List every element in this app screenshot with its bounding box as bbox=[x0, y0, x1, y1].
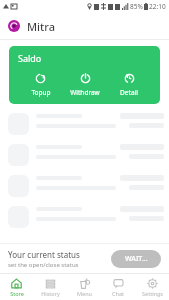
staticText: Saldo bbox=[18, 52, 42, 64]
button[interactable]: Settings bbox=[135, 278, 169, 297]
staticText: WAIT... bbox=[125, 254, 148, 264]
staticText: 85% bbox=[130, 2, 143, 11]
button[interactable]: Withdraw bbox=[63, 72, 107, 97]
staticText: 22:10 bbox=[149, 2, 166, 11]
button[interactable] bbox=[0, 140, 169, 171]
staticText: Your current status bbox=[8, 249, 80, 260]
staticText: Topup bbox=[31, 88, 51, 97]
button[interactable]: History bbox=[33, 278, 67, 297]
button[interactable] bbox=[0, 171, 169, 202]
other: Withdraw bbox=[79, 72, 92, 85]
staticText: Mitra bbox=[27, 19, 56, 34]
button[interactable]: Chat bbox=[101, 278, 135, 297]
staticText: History bbox=[41, 290, 60, 297]
button[interactable]: Topup bbox=[18, 72, 63, 97]
button[interactable] bbox=[0, 109, 169, 140]
staticText: Detail bbox=[120, 88, 138, 97]
button[interactable]: Mitra logo bbox=[8, 20, 20, 32]
other: Topup bbox=[34, 72, 47, 85]
button[interactable]: Detail bbox=[107, 72, 151, 97]
button[interactable]: WAIT... bbox=[111, 250, 161, 268]
other: Detail bbox=[123, 72, 136, 85]
button[interactable]: Menu bbox=[67, 278, 101, 297]
button[interactable]: Store bbox=[0, 278, 33, 297]
staticText: Withdraw bbox=[70, 88, 100, 97]
staticText: Chat bbox=[112, 290, 124, 297]
button[interactable] bbox=[0, 202, 169, 233]
staticText: Store bbox=[10, 290, 24, 297]
button[interactable]: Saldo bbox=[9, 46, 160, 104]
staticText: Menu bbox=[77, 290, 92, 297]
staticText: Settings bbox=[142, 290, 163, 297]
staticText: set the open/close status bbox=[8, 261, 79, 269]
